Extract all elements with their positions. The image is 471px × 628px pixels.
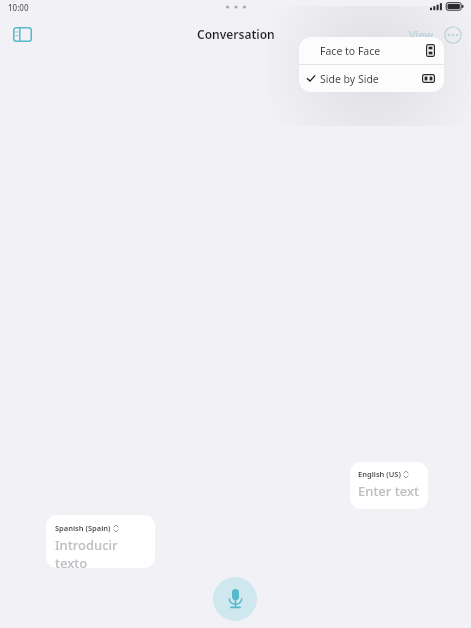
staticText: Enter text (358, 482, 419, 500)
button[interactable]: Face to Face (299, 37, 444, 64)
staticText: English (US) (358, 469, 401, 479)
staticText: Side by Side (320, 72, 379, 86)
staticText: Conversation (197, 26, 275, 42)
staticText: Face to Face (320, 44, 381, 58)
staticText: Introducir texto (55, 536, 149, 568)
button[interactable]: English (US) (350, 462, 428, 509)
button[interactable]: More options (442, 24, 464, 46)
staticText: Spanish (Spain) (55, 523, 111, 533)
button[interactable]: Side by Side (299, 65, 444, 92)
button[interactable]: Show sidebar (8, 20, 36, 48)
button[interactable]: Record speech (213, 577, 257, 621)
button[interactable]: Spanish (Spain) (46, 515, 155, 568)
button[interactable]: View (406, 23, 437, 46)
staticText: 10:00 (8, 2, 29, 13)
staticText: View (409, 27, 434, 42)
